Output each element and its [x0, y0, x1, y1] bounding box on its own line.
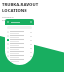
- staticText: Pellentesque habitant morbi tristique: [2, 16, 21, 21]
- staticText: TRUBKA-RAVOUT: [2, 2, 39, 8]
- button[interactable]: [7, 30, 32, 34]
- button[interactable]: [7, 54, 32, 58]
- button[interactable]: [7, 42, 32, 46]
- button[interactable]: [5, 19, 34, 25]
- button[interactable]: [7, 46, 32, 50]
- button[interactable]: [7, 58, 32, 62]
- button[interactable]: [7, 34, 32, 38]
- button[interactable]: [7, 50, 32, 54]
- button[interactable]: [7, 38, 32, 42]
- staticText: LOCATIONS: [2, 8, 27, 14]
